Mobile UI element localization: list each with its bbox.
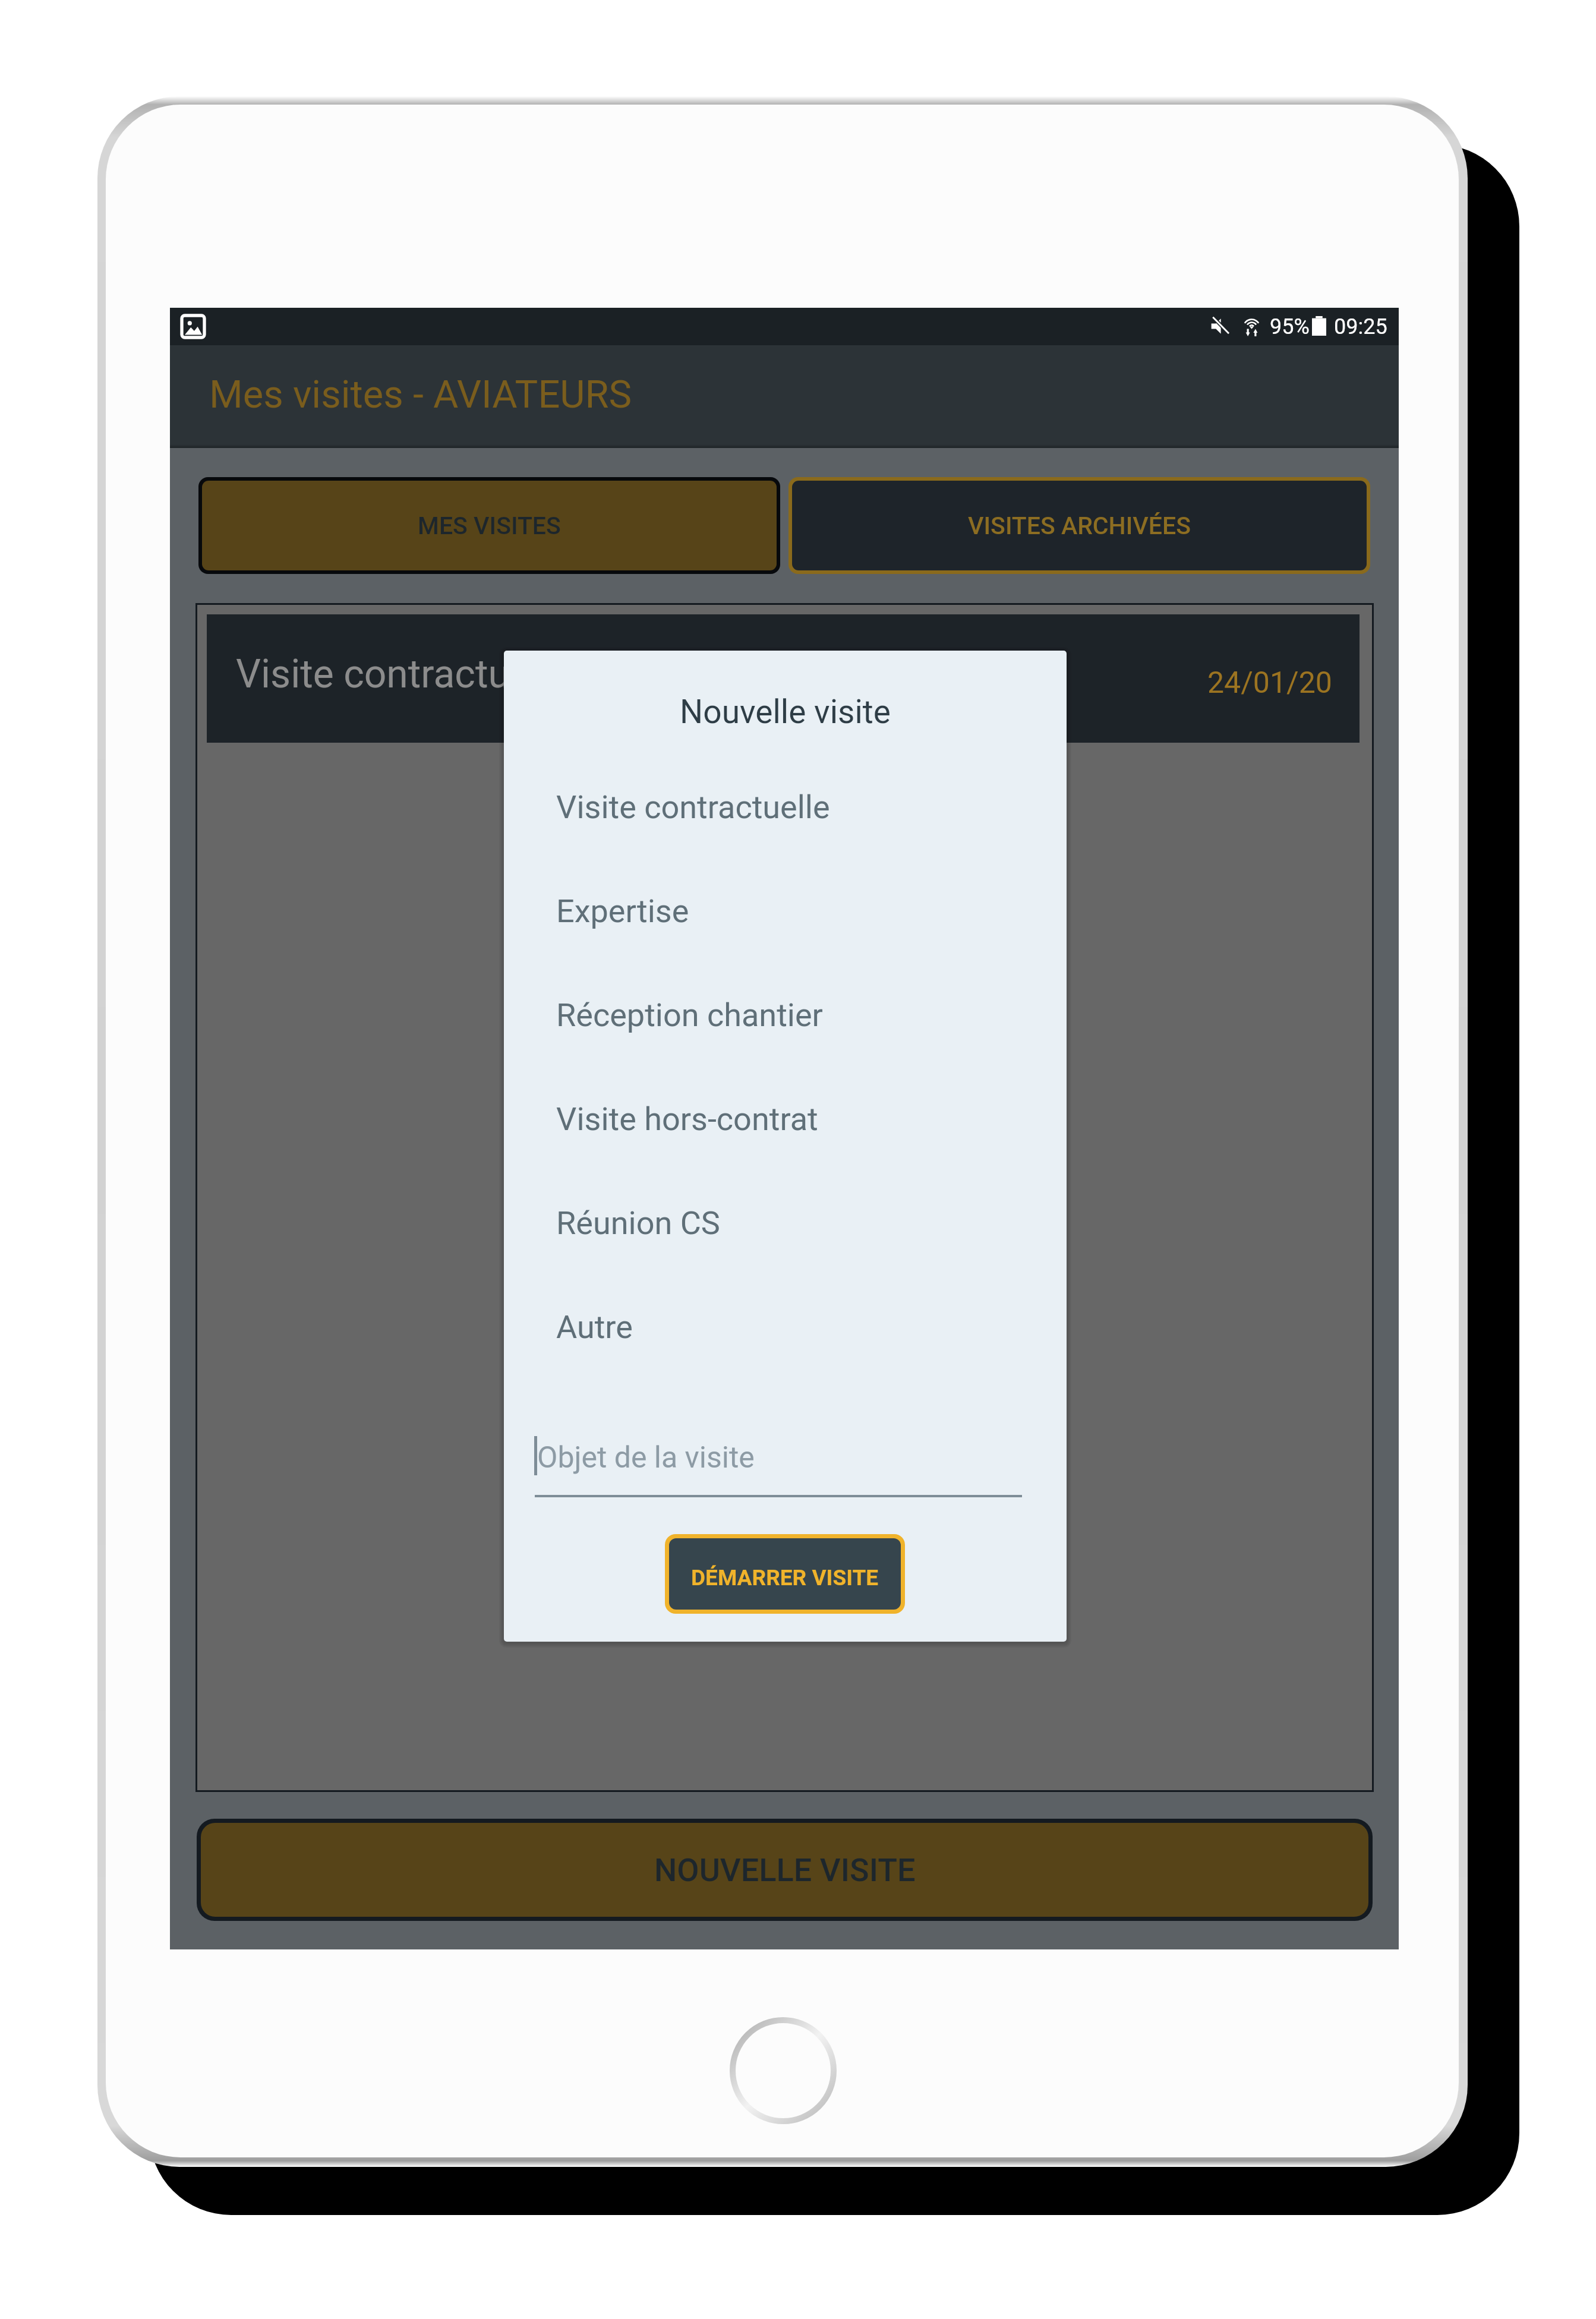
button[interactable]: Visite contractuelle: [207, 614, 1360, 743]
button[interactable]: Réception chantier: [504, 968, 1067, 1072]
staticText: Visite contractuelle: [236, 651, 570, 697]
button[interactable]: Visite hors-contrat: [504, 1072, 1067, 1176]
other: Screenshot saved: [182, 315, 204, 337]
button[interactable]: MES VISITES: [198, 477, 780, 574]
staticText: Réception chantier: [556, 996, 823, 1034]
staticText: NOUVELLE VISITE: [654, 1851, 916, 1889]
button[interactable]: VISITES ARCHIVÉES: [788, 477, 1370, 574]
staticText: DÉMARRER VISITE: [691, 1565, 879, 1591]
staticText: Expertise: [556, 892, 689, 930]
staticText: Visite hors-contrat: [556, 1100, 818, 1138]
other: Sound off: [1211, 317, 1230, 336]
button[interactable]: Réunion CS: [504, 1176, 1067, 1280]
other: Home: [730, 2017, 837, 2124]
button[interactable]: Expertise: [504, 864, 1067, 968]
other: Wi-Fi: [1243, 317, 1260, 336]
staticText: Réunion CS: [556, 1204, 720, 1242]
staticText: Visite contractuelle: [556, 788, 830, 826]
button[interactable]: Visite contractuelle: [504, 760, 1067, 864]
staticText: Nouvelle visite: [504, 693, 1067, 731]
staticText: Mes visites - AVIATEURS: [209, 372, 632, 417]
staticText: 09:25: [1334, 314, 1387, 339]
button[interactable]: DÉMARRER VISITE: [665, 1534, 905, 1614]
staticText: 24/01/20: [1207, 665, 1332, 701]
staticText: VISITES ARCHIVÉES: [968, 512, 1191, 540]
staticText: MES VISITES: [418, 512, 561, 540]
staticText: 95%: [1270, 314, 1310, 339]
staticText: Autre: [556, 1308, 633, 1346]
staticText: Objet de la visite: [537, 1440, 755, 1475]
button[interactable]: NOUVELLE VISITE: [197, 1819, 1373, 1921]
button[interactable]: Autre: [504, 1280, 1067, 1384]
